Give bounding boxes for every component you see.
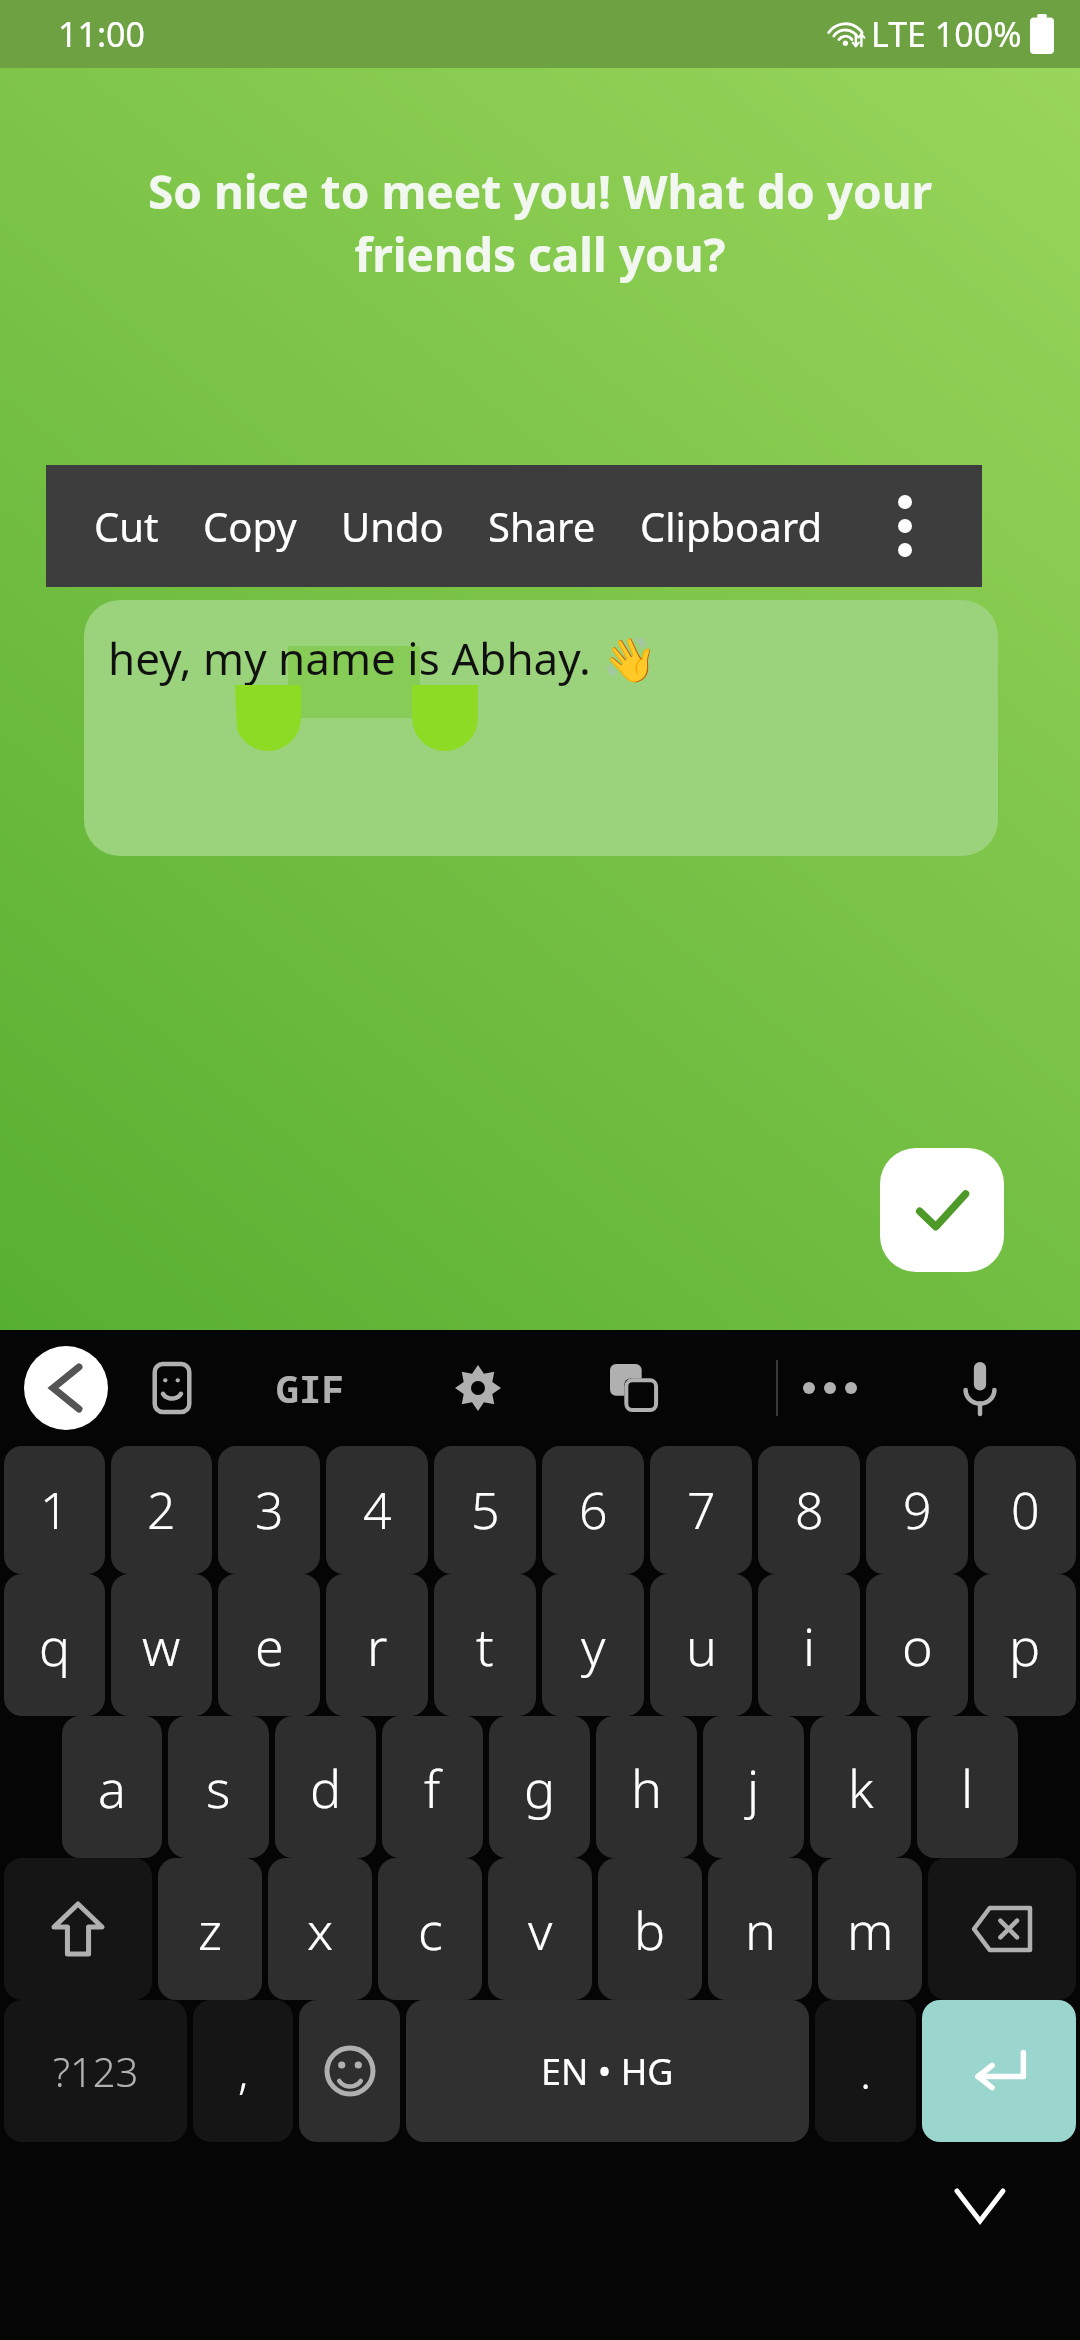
button[interactable]: Share <box>466 465 618 587</box>
staticText: a <box>98 1752 126 1823</box>
staticText: c <box>418 1894 443 1965</box>
button[interactable]: u <box>650 1574 752 1716</box>
button[interactable]: p <box>974 1574 1076 1716</box>
button[interactable]: 9 <box>866 1446 968 1574</box>
button[interactable]: , <box>193 2000 293 2142</box>
button[interactable]: Hide keyboard <box>925 2151 1035 2261</box>
button[interactable]: t <box>434 1574 536 1716</box>
button[interactable]: Translate <box>590 1344 678 1432</box>
staticText: y <box>581 1610 606 1681</box>
button[interactable]: b <box>598 1858 702 2000</box>
button[interactable]: z <box>158 1858 262 2000</box>
button[interactable]: Emoji <box>299 2000 400 2142</box>
button[interactable]: s <box>168 1716 269 1858</box>
staticText: 7 <box>687 1476 716 1544</box>
button[interactable]: 1 <box>4 1446 105 1574</box>
staticText: 0 <box>1011 1476 1040 1544</box>
button[interactable]: k <box>810 1716 911 1858</box>
staticText: 8 <box>795 1476 824 1544</box>
staticText: hey, my name is Abhay. 👋 <box>108 628 657 688</box>
staticText: h <box>631 1752 662 1823</box>
staticText: , <box>238 2040 249 2103</box>
button[interactable]: 2 <box>111 1446 212 1574</box>
button[interactable]: i <box>758 1574 860 1716</box>
button[interactable]: 5 <box>434 1446 536 1574</box>
button[interactable]: 3 <box>218 1446 320 1574</box>
staticText: v <box>528 1894 553 1965</box>
button[interactable]: 0 <box>974 1446 1076 1574</box>
staticText: p <box>1009 1610 1041 1681</box>
button[interactable]: c <box>378 1858 482 2000</box>
button[interactable]: ?123 <box>4 2000 187 2142</box>
button[interactable]: Backspace <box>928 1858 1076 2000</box>
staticText: 5 <box>471 1476 500 1544</box>
staticText: 9 <box>903 1476 932 1544</box>
button[interactable]: n <box>708 1858 812 2000</box>
staticText: f <box>424 1752 441 1823</box>
staticText: l <box>961 1752 974 1823</box>
button[interactable]: Clipboard <box>618 465 845 587</box>
button[interactable]: Selection end handle <box>412 685 478 751</box>
button[interactable]: v <box>488 1858 592 2000</box>
button[interactable]: . <box>815 2000 916 2142</box>
staticText: Share <box>488 499 596 553</box>
staticText: Undo <box>341 499 444 553</box>
staticText: 2 <box>147 1476 176 1544</box>
button[interactable]: Shift <box>4 1858 152 2000</box>
button[interactable]: 4 <box>326 1446 428 1574</box>
button[interactable]: j <box>703 1716 804 1858</box>
button[interactable]: More <box>786 1344 874 1432</box>
staticText: o <box>902 1610 933 1681</box>
staticText: LTE 100% <box>871 11 1022 57</box>
button[interactable]: m <box>818 1858 922 2000</box>
staticText: s <box>206 1752 231 1823</box>
button[interactable]: EN • HG <box>406 2000 809 2142</box>
staticText: j <box>747 1752 760 1823</box>
button[interactable]: o <box>866 1574 968 1716</box>
button[interactable]: Stickers <box>128 1344 216 1432</box>
button[interactable]: Copy <box>181 465 319 587</box>
staticText: Clipboard <box>640 499 823 553</box>
button[interactable]: y <box>542 1574 644 1716</box>
button[interactable]: w <box>111 1574 212 1716</box>
button[interactable]: GIF <box>266 1344 354 1432</box>
staticText: d <box>310 1752 342 1823</box>
button[interactable]: e <box>218 1574 320 1716</box>
button[interactable] <box>84 600 998 856</box>
button[interactable]: Selection start handle <box>235 685 301 751</box>
button[interactable]: l <box>917 1716 1018 1858</box>
staticText: r <box>367 1610 388 1681</box>
button[interactable]: g <box>489 1716 590 1858</box>
staticText: e <box>255 1610 284 1681</box>
button[interactable]: 6 <box>542 1446 644 1574</box>
button[interactable]: Confirm <box>880 1148 1004 1272</box>
button[interactable]: Back <box>24 1346 108 1430</box>
button[interactable]: f <box>382 1716 483 1858</box>
staticText: GIF <box>276 1362 345 1414</box>
staticText: So nice to meet you! What do your friend… <box>100 160 980 285</box>
button[interactable]: More options <box>857 465 953 587</box>
button[interactable]: q <box>4 1574 105 1716</box>
staticText: b <box>634 1894 666 1965</box>
staticText: EN • HG <box>541 2047 674 2096</box>
button[interactable]: h <box>596 1716 697 1858</box>
button[interactable]: Enter <box>922 2000 1076 2142</box>
button[interactable]: Settings <box>434 1344 522 1432</box>
staticText: 4 <box>363 1476 392 1544</box>
button[interactable]: Undo <box>319 465 466 587</box>
staticText: 6 <box>579 1476 608 1544</box>
staticText: 11:00 <box>58 11 145 57</box>
button[interactable]: x <box>268 1858 372 2000</box>
button[interactable]: d <box>275 1716 376 1858</box>
button[interactable]: 8 <box>758 1446 860 1574</box>
staticText: Copy <box>203 499 297 553</box>
button[interactable]: Voice input <box>936 1344 1024 1432</box>
button[interactable]: 7 <box>650 1446 752 1574</box>
staticText: i <box>803 1610 816 1681</box>
button[interactable]: a <box>62 1716 162 1858</box>
button[interactable]: Cut <box>72 465 181 587</box>
staticText: q <box>39 1610 71 1681</box>
staticText: m <box>847 1894 894 1965</box>
button[interactable]: r <box>326 1574 428 1716</box>
staticText: u <box>686 1610 717 1681</box>
